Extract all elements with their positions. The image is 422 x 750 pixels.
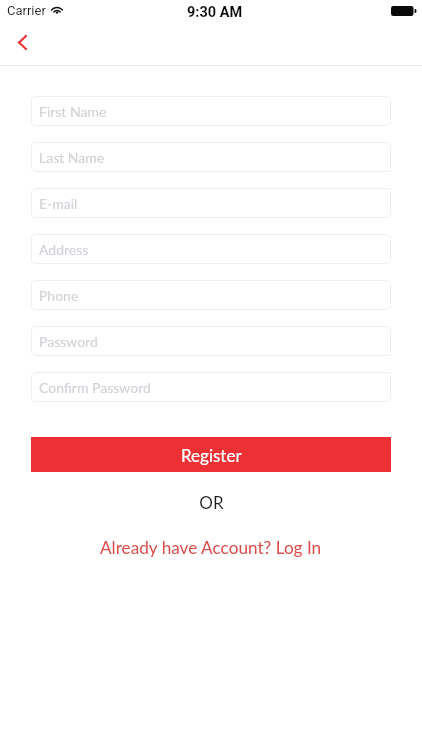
button[interactable]: Register [31, 437, 391, 472]
button[interactable]: Already have Account? Log In [31, 537, 391, 558]
button[interactable]: Password [31, 326, 391, 356]
staticText: Password [39, 333, 98, 350]
staticText: 9:30 AM [187, 4, 243, 21]
staticText: Carrier [7, 3, 46, 18]
staticText: E-mail [39, 195, 78, 212]
staticText: Already have Account? Log In [100, 537, 322, 558]
staticText: Register [181, 445, 242, 465]
button[interactable]: Confirm Password [31, 372, 391, 402]
button[interactable]: E-mail [31, 188, 391, 218]
button[interactable]: Phone [31, 280, 391, 310]
staticText: Phone [39, 287, 79, 304]
button[interactable]: Address [31, 234, 391, 264]
staticText: First Name [39, 103, 107, 120]
staticText: Confirm Password [39, 379, 151, 396]
staticText: OR [199, 492, 224, 512]
staticText: Last Name [39, 149, 105, 166]
staticText: Address [39, 241, 89, 258]
button[interactable]: Last Name [31, 142, 391, 172]
button[interactable]: Back [3, 23, 41, 61]
button[interactable]: First Name [31, 96, 391, 126]
